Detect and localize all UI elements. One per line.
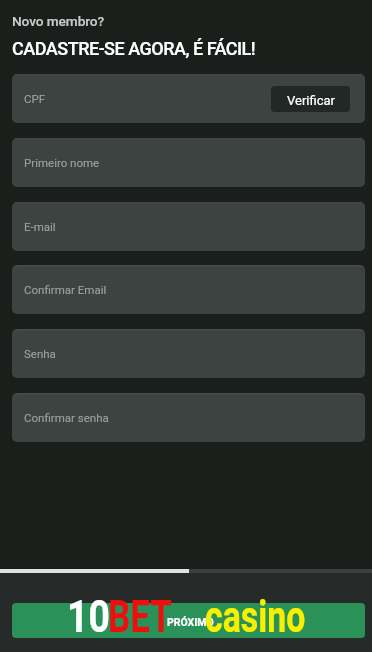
staticText: PRÓXIMO [167, 616, 214, 628]
button[interactable]: PRÓXIMO [12, 603, 365, 638]
staticText: casino [205, 590, 306, 643]
staticText: Primeiro nome [24, 156, 100, 169]
button[interactable]: E-mail [12, 202, 365, 251]
staticText: Confirmar senha [24, 411, 109, 424]
staticText: Confirmar Email [24, 283, 107, 296]
button[interactable]: Verificar [271, 86, 350, 112]
staticText: BET [108, 590, 172, 643]
staticText: Verificar [287, 93, 335, 108]
button[interactable]: 10bet casino [60, 596, 312, 638]
button[interactable]: Confirmar senha [12, 393, 365, 442]
button[interactable]: Confirmar Email [12, 265, 365, 314]
staticText: Senha [24, 347, 56, 360]
button[interactable]: Primeiro nome [12, 138, 365, 187]
staticText: 10 [67, 590, 110, 643]
staticText: CADASTRE-SE AGORA, É FÁCIL! [12, 38, 256, 59]
button[interactable]: Senha [12, 329, 365, 378]
staticText: CPF [24, 92, 46, 105]
staticText: Novo membro? [12, 13, 105, 29]
staticText: E-mail [24, 220, 56, 233]
button[interactable]: CPF [12, 74, 365, 123]
